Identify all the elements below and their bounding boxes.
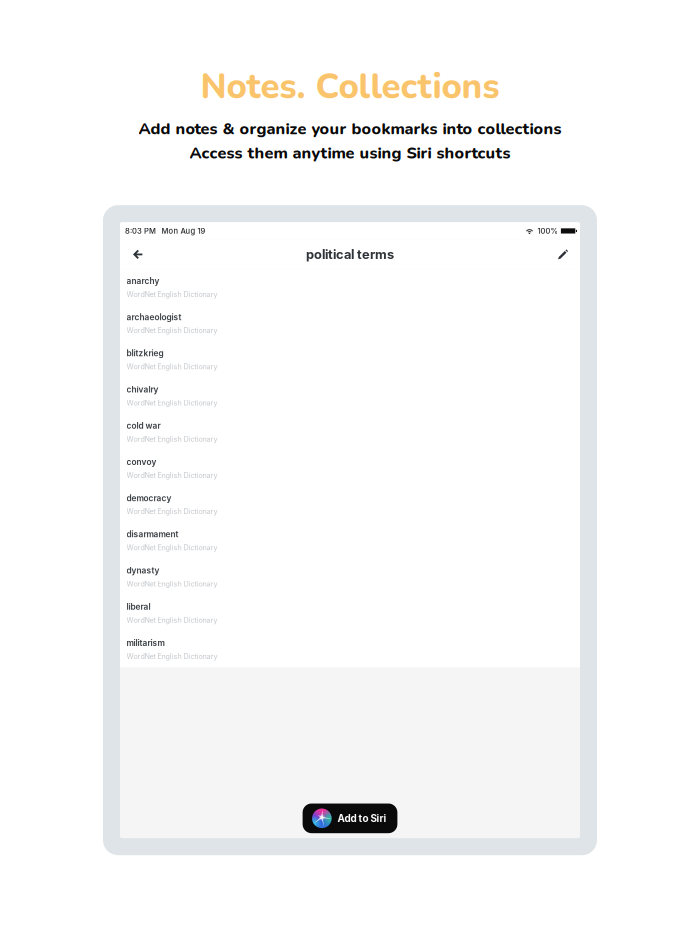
staticText: dynasty	[126, 565, 159, 575]
staticText: militarism	[126, 638, 164, 648]
staticText: anarchy	[126, 276, 159, 286]
staticText: WordNet English Dictionary	[126, 616, 217, 624]
button[interactable]: chivalry	[120, 378, 580, 414]
button[interactable]: anarchy	[120, 269, 580, 305]
staticText: WordNet English Dictionary	[126, 652, 217, 661]
staticText: blitzkrieg	[126, 348, 163, 358]
staticText: WordNet English Dictionary	[126, 290, 217, 299]
staticText: Notes. Collections	[200, 63, 499, 110]
button[interactable]: Add to Siri	[303, 803, 397, 833]
staticText: convoy	[126, 457, 156, 467]
staticText: cold war	[126, 421, 160, 431]
button[interactable]: disarmament	[120, 523, 580, 559]
staticText: WordNet English Dictionary	[126, 362, 217, 371]
button[interactable]: archaeologist	[120, 305, 580, 342]
staticText: WordNet English Dictionary	[126, 543, 217, 552]
staticText: liberal	[126, 602, 150, 612]
button[interactable]: liberal	[120, 595, 580, 631]
button[interactable]: dynasty	[120, 559, 580, 595]
staticText: 100%	[537, 226, 558, 236]
staticText: WordNet English Dictionary	[126, 507, 217, 516]
button[interactable]: Back	[120, 241, 155, 267]
staticText: WordNet English Dictionary	[126, 435, 217, 443]
staticText: democracy	[126, 493, 171, 503]
button[interactable]: Edit	[546, 241, 580, 267]
staticText: 8:03 PM	[125, 226, 156, 236]
staticText: chivalry	[126, 384, 158, 394]
staticText: Add notes & organize your bookmarks into…	[138, 118, 561, 140]
button[interactable]: cold war	[120, 414, 580, 450]
staticText: WordNet English Dictionary	[126, 579, 217, 588]
button[interactable]: convoy	[120, 450, 580, 486]
button[interactable]: militarism	[120, 631, 580, 667]
staticText: WordNet English Dictionary	[126, 398, 217, 407]
staticText: archaeologist	[126, 312, 181, 322]
staticText: WordNet English Dictionary	[126, 326, 217, 335]
staticText: disarmament	[126, 529, 178, 539]
staticText: Access them anytime using Siri shortcuts	[189, 142, 510, 164]
button[interactable]: blitzkrieg	[120, 342, 580, 378]
staticText: WordNet English Dictionary	[126, 471, 217, 480]
staticText: Mon Aug 19	[161, 226, 205, 236]
button[interactable]: democracy	[120, 486, 580, 523]
staticText: Add to Siri	[337, 812, 386, 824]
staticText: political terms	[306, 247, 394, 262]
